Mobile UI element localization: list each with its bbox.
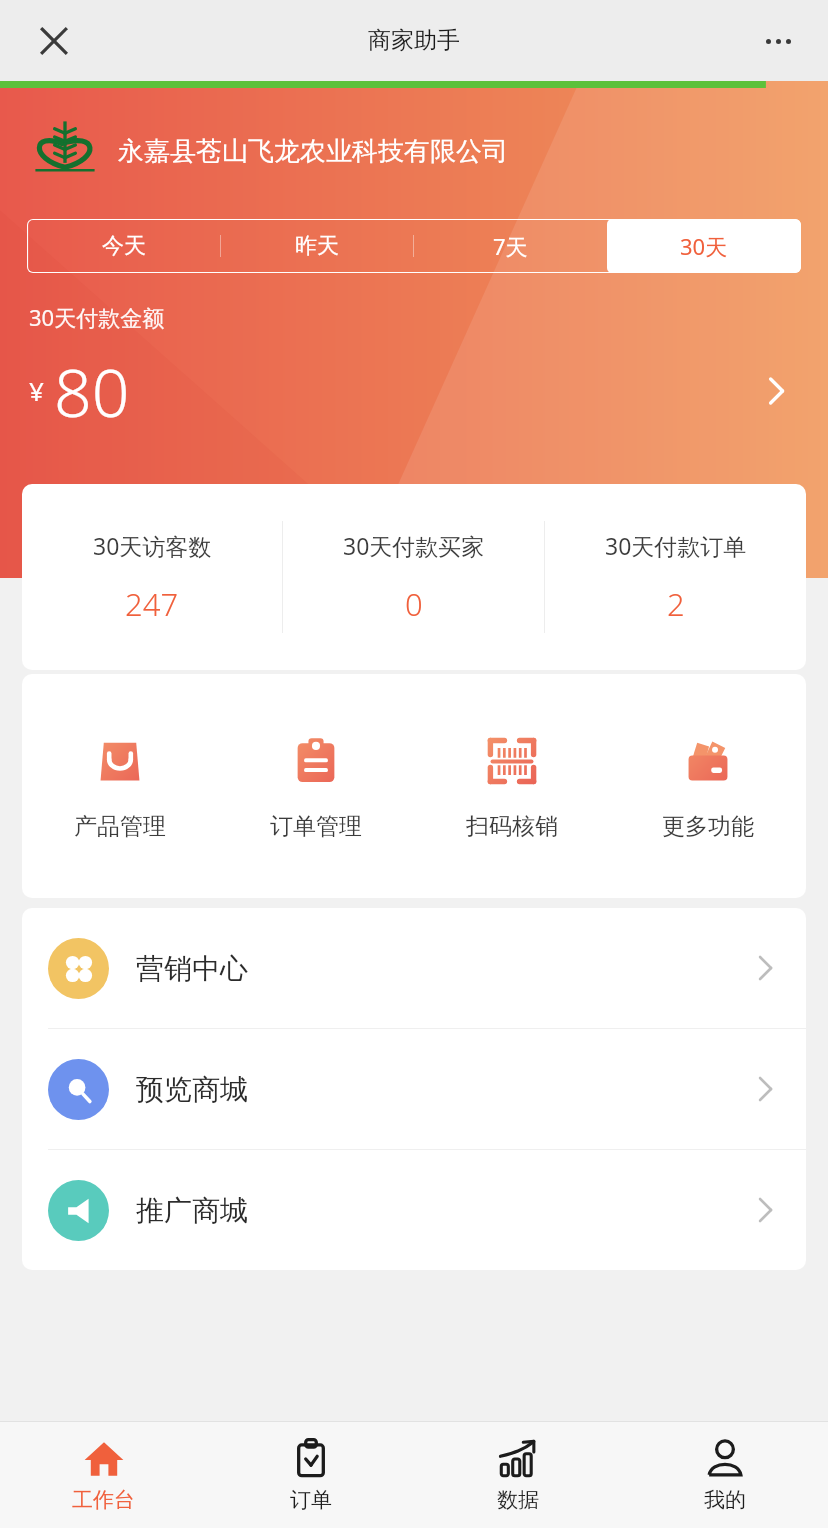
button[interactable]: Close	[22, 9, 86, 73]
staticText: 80	[54, 346, 130, 436]
button[interactable]: 30天访客数	[22, 484, 282, 670]
staticText: 预览商城	[136, 1072, 248, 1107]
button[interactable]: 工作台	[0, 1422, 207, 1528]
staticText: 商家助手	[368, 26, 460, 55]
button[interactable]: 订单	[207, 1422, 414, 1528]
button[interactable]: 30天付款订单	[545, 484, 806, 670]
button[interactable]: 7天	[413, 219, 607, 273]
staticText: 今天	[102, 232, 146, 260]
staticText: 0	[405, 583, 423, 625]
staticText: 30天付款买家	[343, 530, 485, 561]
button[interactable]: 预览商城	[22, 1029, 806, 1149]
button[interactable]: 扫码核销	[414, 674, 610, 898]
button[interactable]: 昨天	[220, 219, 413, 273]
staticText: 产品管理	[74, 812, 166, 841]
button[interactable]: 今天	[27, 219, 220, 273]
staticText: 30天	[680, 231, 728, 261]
staticText: 工作台	[72, 1487, 135, 1513]
staticText: 推广商城	[136, 1193, 248, 1228]
button[interactable]: More options	[750, 13, 806, 69]
staticText: 订单	[290, 1487, 332, 1513]
button[interactable]: 数据	[414, 1422, 621, 1528]
staticText: 扫码核销	[466, 812, 558, 841]
staticText: 我的	[704, 1487, 746, 1513]
staticText: ¥	[29, 373, 44, 408]
button[interactable]: 营销中心	[22, 908, 806, 1028]
staticText: 30天访客数	[93, 530, 212, 561]
button[interactable]: 产品管理	[22, 674, 218, 898]
staticText: 2	[667, 583, 685, 625]
staticText: 247	[125, 583, 179, 625]
button[interactable]: View details	[752, 367, 800, 415]
button[interactable]: 30天	[607, 219, 801, 273]
staticText: 30天付款订单	[605, 530, 747, 561]
button[interactable]: 我的	[621, 1422, 828, 1528]
button[interactable]: 推广商城	[22, 1150, 806, 1270]
staticText: 更多功能	[662, 812, 754, 841]
staticText: 永嘉县苍山飞龙农业科技有限公司	[118, 135, 508, 168]
staticText: 30天付款金额	[29, 302, 165, 332]
button[interactable]: 更多功能	[610, 674, 806, 898]
staticText: 昨天	[295, 232, 339, 260]
staticText: 营销中心	[136, 951, 248, 986]
staticText: 7天	[493, 231, 528, 261]
button[interactable]: 30天付款买家	[283, 484, 544, 670]
staticText: 数据	[497, 1487, 539, 1513]
staticText: 订单管理	[270, 812, 362, 841]
button[interactable]: 订单管理	[218, 674, 414, 898]
